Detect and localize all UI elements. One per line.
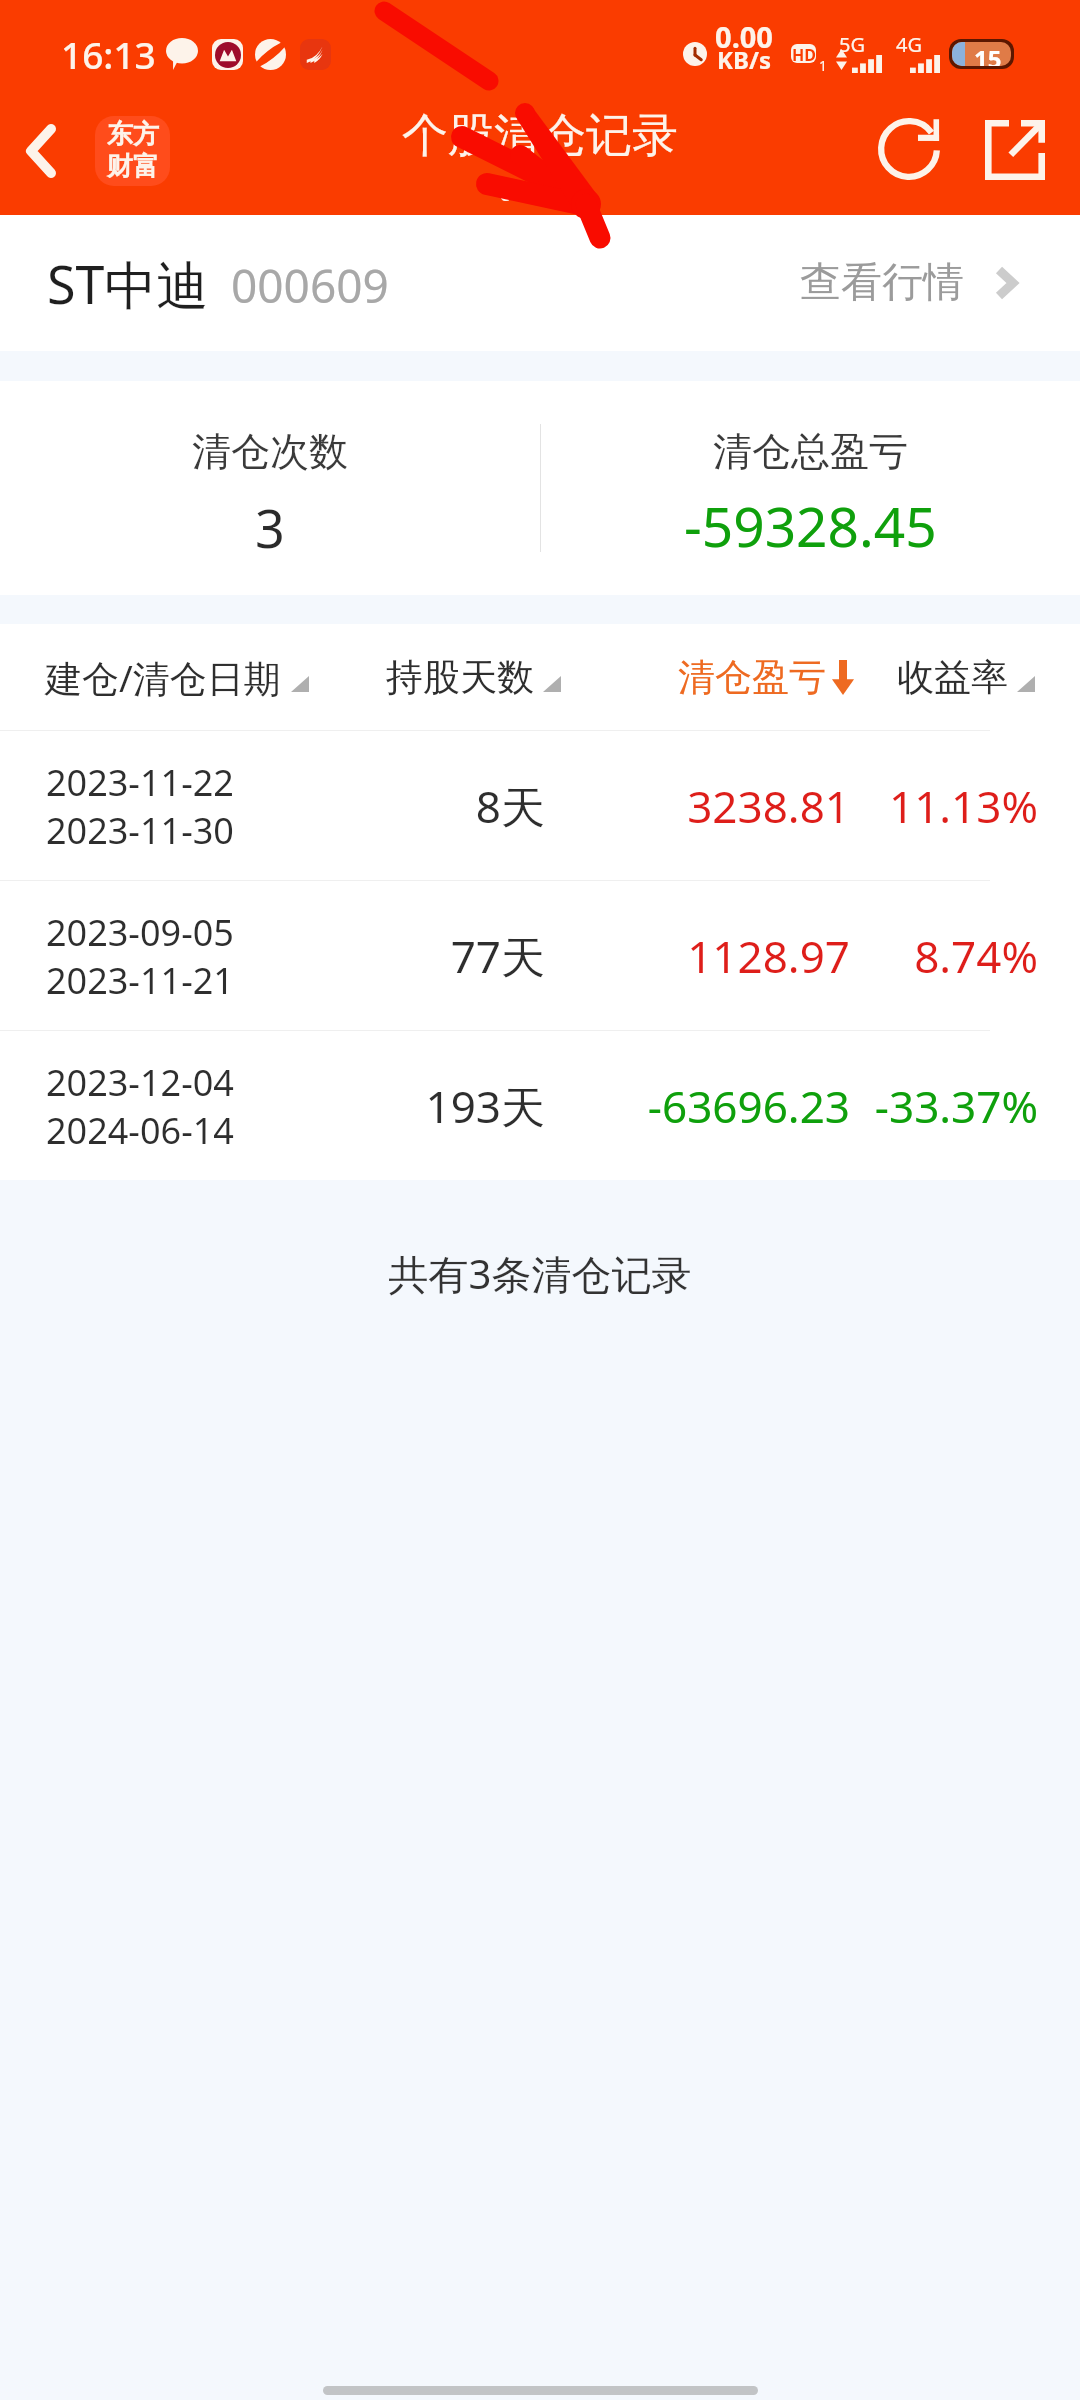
- staticText: 16:13: [61, 29, 156, 79]
- staticText: 2023-12-04 2024-06-14: [46, 1058, 234, 1154]
- button[interactable]: Share: [966, 114, 1062, 210]
- staticText: 4G: [896, 31, 922, 58]
- staticText: HD: [792, 44, 816, 63]
- staticText: 清仓盈亏: [678, 654, 826, 701]
- staticText: 1128.97: [560, 926, 850, 986]
- staticText: 193天: [300, 1076, 545, 1136]
- button[interactable]: 2023-12-04 2024-06-14: [0, 1031, 1080, 1180]
- staticText: 财富: [107, 150, 159, 183]
- staticText: 5G: [839, 31, 865, 58]
- button[interactable]: ST中迪: [0, 215, 1080, 351]
- staticText: 个股清仓记录: [402, 107, 678, 165]
- staticText: 0.00: [712, 17, 776, 56]
- staticText: 2023-09-05 2023-11-21: [46, 908, 234, 1004]
- staticText: -59328.45: [684, 488, 937, 563]
- staticText: 共有3条清仓记录: [0, 1246, 1080, 1301]
- staticText: 000609: [499, 175, 582, 208]
- button[interactable]: 建仓/清仓日期: [45, 652, 309, 703]
- button[interactable]: 清仓盈亏: [678, 654, 855, 701]
- button[interactable]: Refresh: [862, 114, 958, 210]
- staticText: 清仓总盈亏: [713, 427, 908, 476]
- staticText: 3238.81: [560, 776, 850, 836]
- staticText: 8天: [300, 776, 545, 836]
- button[interactable]: Back: [0, 108, 92, 215]
- staticText: 建仓/清仓日期: [45, 652, 281, 703]
- button[interactable]: 持股天数: [386, 654, 561, 701]
- staticText: KB/s: [712, 43, 776, 76]
- staticText: 东方: [107, 118, 159, 151]
- staticText: 000609: [231, 254, 389, 317]
- staticText: 收益率: [897, 654, 1008, 701]
- staticText: 查看行情: [800, 257, 964, 309]
- button[interactable]: 东方: [95, 116, 170, 186]
- staticText: 77天: [300, 926, 545, 986]
- staticText: -63696.23: [560, 1076, 850, 1136]
- button[interactable]: 2023-09-05 2023-11-21: [0, 881, 1080, 1030]
- staticText: 2023-11-22 2023-11-30: [46, 758, 234, 854]
- staticText: 11.13%: [850, 776, 1038, 836]
- button[interactable]: 收益率: [897, 654, 1035, 701]
- staticText: 持股天数: [386, 654, 534, 701]
- staticText: 1: [819, 56, 828, 75]
- button[interactable]: 2023-11-22 2023-11-30: [0, 731, 1080, 880]
- staticText: 15: [974, 42, 1002, 66]
- staticText: ST中迪: [47, 248, 209, 319]
- staticText: 3: [255, 492, 285, 563]
- staticText: 8.74%: [850, 926, 1038, 986]
- staticText: -33.37%: [850, 1076, 1038, 1136]
- staticText: 清仓次数: [192, 427, 348, 476]
